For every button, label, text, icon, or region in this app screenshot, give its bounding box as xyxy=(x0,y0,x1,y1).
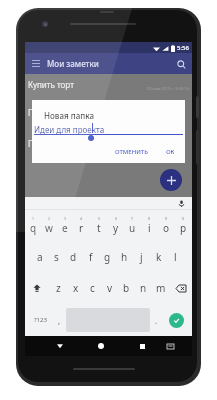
button[interactable]: Switch keyboard xyxy=(163,339,177,353)
staticText: u xyxy=(129,221,136,235)
staticText: ?123 xyxy=(34,316,47,324)
staticText: 9 xyxy=(165,216,168,221)
button[interactable]: b xyxy=(118,272,135,304)
button[interactable]: Backspace xyxy=(169,272,192,304)
staticText: z xyxy=(56,281,61,295)
button[interactable]: ОК xyxy=(162,146,179,158)
staticText: , xyxy=(58,315,61,326)
button[interactable]: Позвонить маме xyxy=(25,105,192,119)
button[interactable]: n xyxy=(135,272,152,304)
button[interactable]: d xyxy=(65,241,82,272)
staticText: 2 xyxy=(48,216,51,221)
button[interactable]: 0 xyxy=(175,210,192,241)
button[interactable]: g xyxy=(99,241,116,272)
staticText: r xyxy=(79,221,84,235)
button[interactable]: 2 xyxy=(41,210,57,241)
staticText: f xyxy=(89,250,93,264)
button[interactable]: ?123 xyxy=(27,306,53,334)
staticText: s xyxy=(54,250,59,264)
button[interactable]: c xyxy=(84,272,101,304)
button[interactable]: Shift xyxy=(25,272,49,304)
staticText: Идеи для проекта xyxy=(34,124,105,135)
staticText: x xyxy=(73,281,79,295)
button[interactable]: h xyxy=(116,241,133,272)
staticText: 6 xyxy=(115,216,118,221)
staticText: y xyxy=(113,221,119,235)
button[interactable]: k xyxy=(150,241,167,272)
button[interactable]: Search xyxy=(174,57,188,71)
staticText: n xyxy=(140,281,147,295)
staticText: e xyxy=(62,221,68,235)
staticText: q xyxy=(30,221,37,235)
staticText: d xyxy=(70,250,77,264)
button[interactable]: Add note xyxy=(160,169,182,191)
button[interactable]: Купить торт xyxy=(25,77,192,91)
button[interactable]: , xyxy=(53,306,66,334)
staticText: 4 xyxy=(80,216,83,221)
staticText: o xyxy=(163,221,170,235)
button[interactable]: m xyxy=(152,272,169,304)
staticText: Проверить почту xyxy=(28,138,95,149)
staticText: m xyxy=(156,281,166,295)
button[interactable]: Menu xyxy=(29,57,43,71)
button[interactable]: 6 xyxy=(107,210,124,241)
button[interactable]: Voice input xyxy=(177,199,186,208)
staticText: j xyxy=(140,250,143,264)
staticText: 5:56 xyxy=(177,44,189,52)
button[interactable]: 3 xyxy=(57,210,73,241)
staticText: ОК xyxy=(166,148,175,156)
staticText: v xyxy=(107,281,113,295)
staticText: Новая папка xyxy=(44,110,94,121)
button[interactable]: Back xyxy=(53,339,67,353)
button[interactable]: f xyxy=(82,241,99,272)
staticText: w xyxy=(45,221,53,235)
button[interactable]: Enter xyxy=(169,313,184,328)
staticText: k xyxy=(156,250,162,264)
button[interactable]: 7 xyxy=(124,210,141,241)
button[interactable]: 4 xyxy=(73,210,90,241)
staticText: g xyxy=(104,250,111,264)
button[interactable]: 9 xyxy=(158,210,175,241)
staticText: h xyxy=(121,250,128,264)
staticText: Купить торт xyxy=(28,79,74,90)
staticText: 1 xyxy=(32,216,35,221)
staticText: 8 xyxy=(148,216,151,221)
button[interactable]: j xyxy=(133,241,150,272)
button[interactable]: 1 xyxy=(25,210,41,241)
button[interactable]: l xyxy=(167,241,184,272)
staticText: ОТМЕНИТЬ xyxy=(115,148,148,156)
staticText: 20 мая 2019 г. 8:55:14 xyxy=(147,86,189,91)
staticText: 7 xyxy=(131,216,134,221)
button[interactable]: 8 xyxy=(141,210,158,241)
button[interactable]: . xyxy=(150,306,163,334)
staticText: l xyxy=(174,250,177,264)
staticText: c xyxy=(90,281,95,295)
button[interactable]: z xyxy=(49,272,67,304)
staticText: . xyxy=(155,315,158,326)
button[interactable]: a xyxy=(32,241,48,272)
button[interactable]: ОТМЕНИТЬ xyxy=(111,146,152,158)
staticText: b xyxy=(123,281,130,295)
staticText: Мои заметки xyxy=(47,58,99,69)
button[interactable]: v xyxy=(101,272,118,304)
staticText: 0 xyxy=(182,216,185,221)
button[interactable]: Проверить почту xyxy=(25,136,192,150)
button[interactable]: s xyxy=(48,241,65,272)
staticText: p xyxy=(180,221,187,235)
button[interactable]: Home xyxy=(94,339,108,353)
button[interactable]: x xyxy=(67,272,84,304)
staticText: Позвонить маме xyxy=(28,107,93,118)
button[interactable]: 5 xyxy=(90,210,107,241)
staticText: t xyxy=(97,221,101,235)
staticText: 3 xyxy=(64,216,67,221)
button[interactable]: Recents xyxy=(135,339,149,353)
staticText: i xyxy=(148,221,151,235)
staticText: 5 xyxy=(98,216,101,221)
staticText: a xyxy=(37,250,43,264)
